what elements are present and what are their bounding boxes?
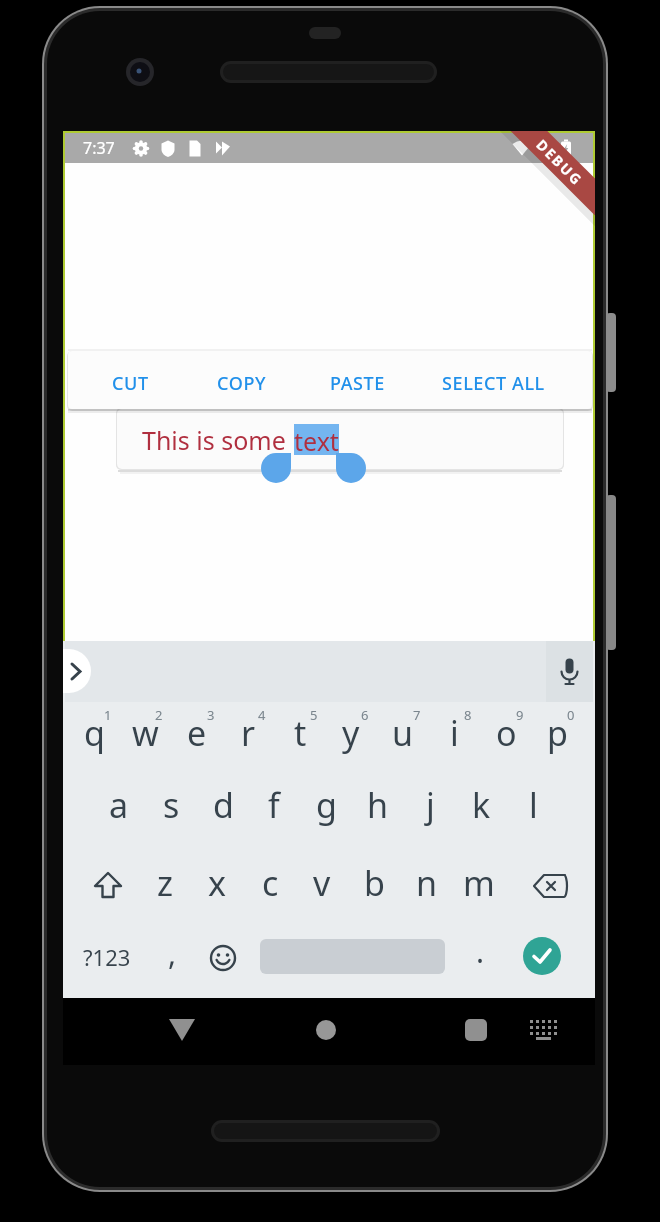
button[interactable]: v xyxy=(296,853,348,913)
staticText: f xyxy=(268,782,280,828)
staticText: ?123 xyxy=(83,942,131,972)
button[interactable]: p xyxy=(531,703,583,763)
button[interactable]: e xyxy=(171,703,223,763)
staticText: 5 xyxy=(310,706,318,724)
staticText: text xyxy=(294,424,339,455)
staticText: 4 xyxy=(258,706,266,724)
button[interactable]: d xyxy=(197,775,249,835)
staticText: , xyxy=(168,933,177,974)
button[interactable] xyxy=(261,453,291,483)
button[interactable]: SELECT ALL xyxy=(442,358,545,409)
button[interactable]: COPY xyxy=(217,358,267,409)
staticText: b xyxy=(364,860,385,906)
button[interactable]: o xyxy=(480,703,532,763)
button[interactable]: ?123 xyxy=(79,935,135,979)
staticText: 8 xyxy=(464,706,472,724)
button[interactable] xyxy=(546,641,593,702)
button[interactable]: m xyxy=(453,853,505,913)
staticText: k xyxy=(472,782,491,828)
staticText: 7:37 xyxy=(83,137,115,159)
staticText: j xyxy=(426,782,435,828)
button[interactable] xyxy=(336,453,366,483)
staticText: w xyxy=(132,710,159,756)
staticText: m xyxy=(463,860,495,906)
staticText: 7 xyxy=(413,706,421,724)
staticText: o xyxy=(496,710,517,756)
staticText: g xyxy=(316,782,337,828)
staticText: i xyxy=(450,710,459,756)
button[interactable]: r xyxy=(222,703,274,763)
button[interactable]: g xyxy=(300,775,352,835)
button[interactable]: y xyxy=(325,703,377,763)
staticText: 6 xyxy=(361,706,369,724)
staticText: 9 xyxy=(516,706,524,724)
staticText: s xyxy=(163,782,180,828)
staticText: 1 xyxy=(104,706,112,724)
button[interactable] xyxy=(299,1008,353,1052)
button[interactable]: x xyxy=(191,853,243,913)
button[interactable]: i xyxy=(428,703,480,763)
staticText: t xyxy=(294,710,307,756)
button[interactable]: n xyxy=(401,853,453,913)
button[interactable]: c xyxy=(244,853,296,913)
staticText: u xyxy=(392,710,414,756)
button[interactable]: z xyxy=(139,853,191,913)
staticText: c xyxy=(262,860,279,906)
button[interactable] xyxy=(531,872,571,900)
staticText: z xyxy=(157,860,173,906)
staticText: p xyxy=(547,710,568,756)
button[interactable] xyxy=(523,937,561,975)
staticText: a xyxy=(109,782,129,828)
staticText: COPY xyxy=(217,371,267,396)
button[interactable]: h xyxy=(352,775,404,835)
staticText: l xyxy=(529,782,538,828)
button[interactable]: s xyxy=(145,775,197,835)
button[interactable]: b xyxy=(348,853,400,913)
staticText: . xyxy=(476,931,485,972)
staticText: n xyxy=(416,860,438,906)
button[interactable]: u xyxy=(377,703,429,763)
staticText: SELECT ALL xyxy=(442,371,545,396)
button[interactable] xyxy=(449,1008,503,1052)
staticText: x xyxy=(208,860,226,906)
button[interactable]: CUT xyxy=(112,358,149,409)
button[interactable] xyxy=(90,870,126,902)
staticText: 2 xyxy=(155,706,163,724)
button[interactable]: t xyxy=(274,703,326,763)
button[interactable]: l xyxy=(507,775,559,835)
staticText: r xyxy=(241,710,256,756)
button[interactable]: , xyxy=(146,923,198,983)
staticText: q xyxy=(84,710,105,756)
staticText: DEBUG xyxy=(532,135,588,190)
staticText: 3 xyxy=(207,706,215,724)
button[interactable] xyxy=(63,649,91,693)
staticText: y xyxy=(342,710,360,756)
button[interactable]: a xyxy=(93,775,145,835)
staticText: This is some xyxy=(142,423,293,457)
staticText: d xyxy=(213,782,234,828)
button[interactable]: j xyxy=(404,775,456,835)
staticText: h xyxy=(367,782,389,828)
staticText: CUT xyxy=(112,371,149,396)
staticText: e xyxy=(187,710,207,756)
button[interactable]: w xyxy=(119,703,171,763)
staticText: PASTE xyxy=(330,371,385,396)
button[interactable]: f xyxy=(248,775,300,835)
button[interactable]: PASTE xyxy=(330,358,385,409)
button[interactable] xyxy=(155,1008,209,1052)
button[interactable]: q xyxy=(68,703,120,763)
button[interactable] xyxy=(209,944,237,972)
button[interactable]: k xyxy=(455,775,507,835)
button[interactable]: . xyxy=(454,921,506,981)
staticText: 0 xyxy=(567,706,575,724)
staticText: v xyxy=(313,860,331,906)
